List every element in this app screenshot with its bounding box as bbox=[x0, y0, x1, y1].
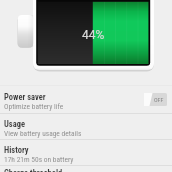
button[interactable]: History bbox=[0, 140, 172, 165]
staticText: History bbox=[4, 145, 29, 155]
button[interactable]: Power saver toggle, off bbox=[144, 93, 167, 106]
staticText: OFF bbox=[154, 96, 164, 103]
staticText: Usage bbox=[4, 119, 26, 129]
staticText: 44% bbox=[82, 28, 105, 42]
button[interactable]: Power saver bbox=[0, 86, 172, 113]
staticText: Optimize battery life bbox=[4, 102, 64, 111]
staticText: 17h 21m 50s on battery bbox=[4, 155, 74, 164]
staticText: Power saver bbox=[4, 92, 46, 102]
staticText: Charge threshold bbox=[4, 168, 63, 172]
button[interactable]: Usage bbox=[0, 114, 172, 139]
staticText: View battery usage details bbox=[4, 129, 82, 138]
button[interactable]: Charge threshold bbox=[0, 166, 172, 172]
